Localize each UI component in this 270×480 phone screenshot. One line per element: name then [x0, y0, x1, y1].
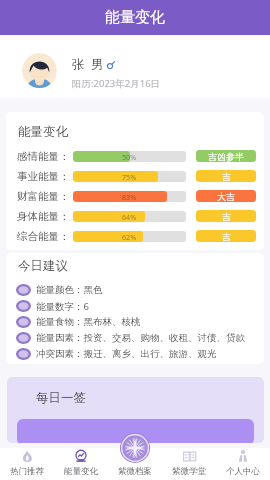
button[interactable]: 紫微档案: [108, 448, 162, 480]
staticText: 能量变化: [64, 466, 98, 477]
button[interactable]: 热门推荐: [0, 448, 54, 480]
button[interactable]: 紫微学堂: [162, 448, 216, 480]
staticText: 50%: [122, 152, 137, 162]
staticText: 64%: [122, 212, 137, 222]
staticText: 62%: [122, 232, 137, 242]
staticText: 能量变化: [18, 124, 68, 140]
staticText: 紫微学堂: [172, 466, 206, 477]
staticText: 大吉: [217, 191, 235, 202]
other: 紫微学堂: [183, 451, 196, 462]
staticText: 事业能量：: [17, 170, 70, 183]
other: 紫微档案: [120, 433, 150, 463]
button[interactable]: 个人中心: [216, 448, 270, 480]
staticText: 能量数字：6: [36, 300, 89, 313]
staticText: 75%: [122, 172, 137, 182]
staticText: 紫微档案: [118, 466, 152, 477]
staticText: 今日建议: [18, 258, 68, 274]
staticText: 能量因素：投资、交易、购物、收租、讨债、贷款: [36, 332, 245, 344]
staticText: 张 男: [72, 56, 104, 73]
staticText: 吉: [222, 171, 231, 182]
staticText: 吉: [222, 231, 231, 242]
staticText: 能量食物：黑布林、核桃: [36, 316, 141, 328]
staticText: 能量变化: [105, 8, 165, 27]
button[interactable]: 能量变化: [54, 448, 108, 480]
staticText: 身体能量：: [17, 210, 70, 223]
staticText: 冲突因素：搬迁、离乡、出行、旅游、观光: [36, 348, 217, 360]
other: 个人中心: [237, 450, 249, 462]
staticText: 热门推荐: [10, 466, 44, 477]
staticText: 每日一签: [36, 390, 86, 406]
staticText: 财富能量：: [17, 190, 70, 203]
staticText: 能量颜色：黑色: [36, 284, 103, 296]
staticText: 感情能量：: [17, 150, 70, 163]
staticText: 吉凶参半: [208, 151, 244, 162]
staticText: 阳历:2023年2月16日: [72, 77, 161, 90]
staticText: 吉: [222, 211, 231, 222]
other: 热门推荐: [22, 450, 33, 462]
other: 能量变化: [75, 450, 87, 462]
staticText: 83%: [122, 192, 137, 202]
staticText: 综合能量：: [17, 230, 70, 243]
staticText: 个人中心: [226, 466, 260, 477]
